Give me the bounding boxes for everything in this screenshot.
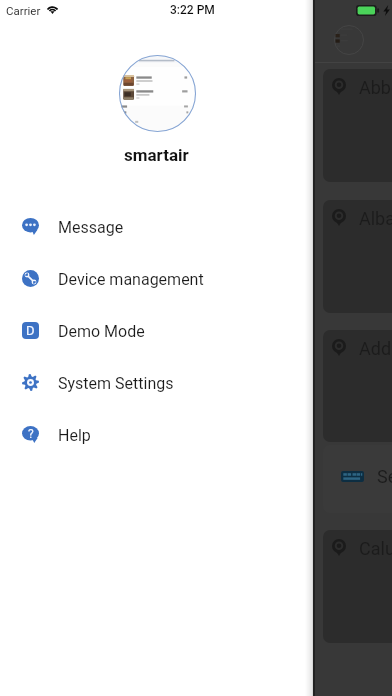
staticText: 3:22 PM (170, 3, 215, 17)
staticText: Carrier (6, 4, 41, 17)
staticText: Help (58, 426, 91, 445)
other: Device management (22, 270, 39, 287)
staticText: Albacete (359, 208, 392, 229)
staticText: Device management (58, 270, 204, 289)
other: Help (22, 426, 39, 443)
staticText: smartair (124, 145, 189, 165)
staticText: System Settings (58, 374, 174, 393)
staticText: Calucuta (359, 538, 392, 559)
staticText: Server (377, 466, 392, 487)
staticText: D (26, 323, 35, 338)
button[interactable]: Server (323, 445, 392, 513)
other: System Settings (22, 374, 39, 391)
staticText: Abbey Road (359, 77, 392, 98)
staticText: Addis Ababa (359, 338, 392, 359)
staticText: ? (28, 427, 34, 441)
button[interactable]: Demo Mode (0, 304, 313, 356)
other: Message (22, 218, 39, 235)
button[interactable]: System Settings (0, 356, 313, 408)
other: Demo Mode (22, 322, 39, 339)
staticText: Message (58, 218, 124, 237)
button[interactable]: Message (0, 200, 313, 252)
staticText: Demo Mode (58, 322, 145, 341)
button[interactable]: Device management (0, 252, 313, 304)
button[interactable]: Help (0, 408, 313, 460)
